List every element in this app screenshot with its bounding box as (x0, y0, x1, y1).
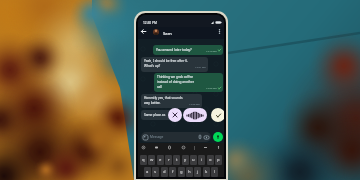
button[interactable]: Back (140, 28, 147, 35)
button[interactable]: t (173, 155, 180, 165)
staticText: d (163, 169, 166, 175)
button[interactable]: d (161, 167, 168, 177)
button[interactable]: Same place as (141, 110, 174, 120)
staticText: You around later today? (156, 48, 192, 52)
button[interactable]: j (194, 167, 201, 177)
staticText: o (209, 157, 212, 163)
button[interactable]: a (144, 167, 151, 177)
button[interactable]: Keyboard tool (167, 145, 172, 150)
button[interactable]: Cancel recording (168, 108, 182, 122)
staticText: w (150, 157, 154, 163)
staticText: way better. (144, 101, 161, 105)
button[interactable]: Keyboard tool (216, 145, 221, 150)
staticText: s (154, 169, 157, 175)
button[interactable]: l (211, 167, 218, 177)
staticText: 12:21 pm (195, 65, 206, 68)
button[interactable]: w (148, 155, 155, 165)
staticText: e (159, 157, 162, 163)
button[interactable]: Yeah, I should be free after 6. (141, 57, 208, 72)
staticText: Same place as (144, 113, 166, 117)
staticText: 12:10 pm (206, 49, 217, 52)
button[interactable]: Voice message waveform (183, 108, 207, 122)
button[interactable]: h (186, 167, 193, 177)
staticText: Sam (163, 31, 172, 37)
button[interactable]: Record voice message (213, 132, 223, 142)
staticText: i (201, 157, 203, 163)
button[interactable]: u (190, 155, 197, 165)
button[interactable]: Keyboard tool (141, 145, 146, 150)
staticText: Thinking we grab coffee (157, 75, 193, 79)
staticText: a (146, 169, 149, 175)
button[interactable]: You around later today? (153, 45, 223, 55)
staticText: k (205, 169, 208, 175)
staticText: p (217, 157, 220, 163)
button[interactable]: y (182, 155, 189, 165)
staticText: t (176, 157, 178, 163)
button[interactable]: Keyboard tool (154, 145, 159, 150)
staticText: f (172, 169, 174, 175)
button[interactable]: g (178, 167, 185, 177)
staticText: 12:30 PM (143, 21, 157, 25)
staticText: Honestly yes, that sounds (144, 96, 183, 100)
staticText: Yeah, I should be free after 6. (144, 59, 188, 63)
button[interactable]: k (203, 167, 210, 177)
staticText: l (214, 169, 216, 175)
button[interactable]: s (152, 167, 159, 177)
staticText: u (192, 157, 195, 163)
staticText: q (142, 157, 145, 163)
staticText: What's up? (144, 64, 161, 68)
staticText: 12:25 pm (206, 86, 217, 89)
button[interactable]: o (207, 155, 214, 165)
staticText: Message (150, 135, 164, 139)
button[interactable]: i (198, 155, 205, 165)
staticText: 12:26 pm (189, 102, 200, 105)
staticText: g (180, 169, 183, 175)
button[interactable]: Keyboard tool (203, 145, 208, 150)
staticText: h (188, 169, 191, 175)
button[interactable]: Thinking we grab coffee (154, 73, 223, 92)
button[interactable]: p (215, 155, 222, 165)
button[interactable]: More options (216, 28, 223, 35)
button[interactable]: q (140, 155, 147, 165)
button[interactable]: Send voice message (211, 108, 224, 122)
staticText: j (197, 169, 199, 175)
staticText: instead of doing another (157, 80, 195, 84)
button[interactable]: Keyboard tool (181, 145, 186, 150)
staticText: y (184, 157, 187, 163)
button[interactable]: e (157, 155, 164, 165)
staticText: r (168, 157, 170, 163)
button[interactable]: Message (141, 132, 211, 142)
button[interactable]: f (169, 167, 176, 177)
button[interactable]: Honestly yes, that sounds (141, 94, 202, 108)
button[interactable]: r (165, 155, 172, 165)
staticText: call (157, 85, 162, 89)
